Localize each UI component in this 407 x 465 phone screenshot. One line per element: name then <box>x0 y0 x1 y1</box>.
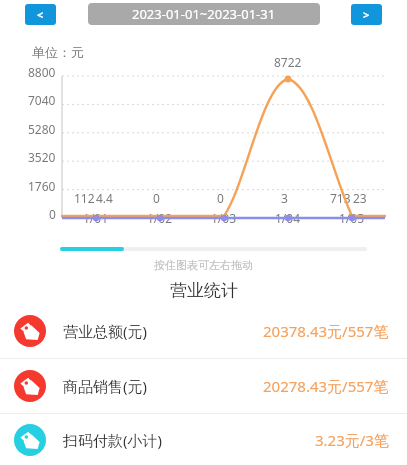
button[interactable]: 2023-01-01~2023-01-31 <box>88 3 320 25</box>
staticText: 2023-01-01~2023-01-31 <box>132 5 276 23</box>
staticText: 单位：元 <box>32 44 84 60</box>
staticText: 按住图表可左右拖动 <box>154 258 253 272</box>
staticText: 7040 <box>28 92 56 108</box>
staticText: 713 <box>330 190 351 206</box>
button[interactable]: 扫码付款(小计) <box>0 414 407 465</box>
staticText: 5280 <box>28 121 56 137</box>
staticText: 1/04 <box>275 210 301 226</box>
staticText: < <box>37 7 44 22</box>
staticText: 3 <box>281 190 288 206</box>
staticText: 0 <box>153 190 160 206</box>
staticText: 1/05 <box>339 210 365 226</box>
button[interactable]: Next period <box>351 4 382 25</box>
staticText: 0 <box>217 190 224 206</box>
staticText: 8800 <box>28 64 56 80</box>
staticText: 1760 <box>28 178 56 194</box>
staticText: 营业统计 <box>170 280 238 301</box>
staticText: 20278.43元/557笔 <box>263 376 389 396</box>
staticText: 4.4 <box>96 190 113 206</box>
staticText: 商品销售(元) <box>63 376 148 396</box>
button[interactable]: 单位：元 <box>0 28 407 254</box>
staticText: 3520 <box>28 149 56 165</box>
staticText: 1/03 <box>211 210 237 226</box>
staticText: 营业总额(元) <box>63 321 148 341</box>
button[interactable]: 营业总额(元) <box>0 304 407 358</box>
staticText: 112 <box>74 190 95 206</box>
staticText: > <box>363 7 370 22</box>
staticText: 20378.43元/557笔 <box>263 321 389 341</box>
staticText: 8722 <box>274 54 302 70</box>
staticText: 23 <box>353 190 367 206</box>
staticText: 3.23元/3笔 <box>315 430 389 450</box>
button[interactable]: Previous period <box>25 4 56 25</box>
staticText: 1/01 <box>83 210 109 226</box>
button[interactable]: 商品销售(元) <box>0 359 407 413</box>
staticText: 扫码付款(小计) <box>63 430 163 450</box>
staticText: 1/02 <box>147 210 173 226</box>
staticText: 0 <box>49 206 56 222</box>
